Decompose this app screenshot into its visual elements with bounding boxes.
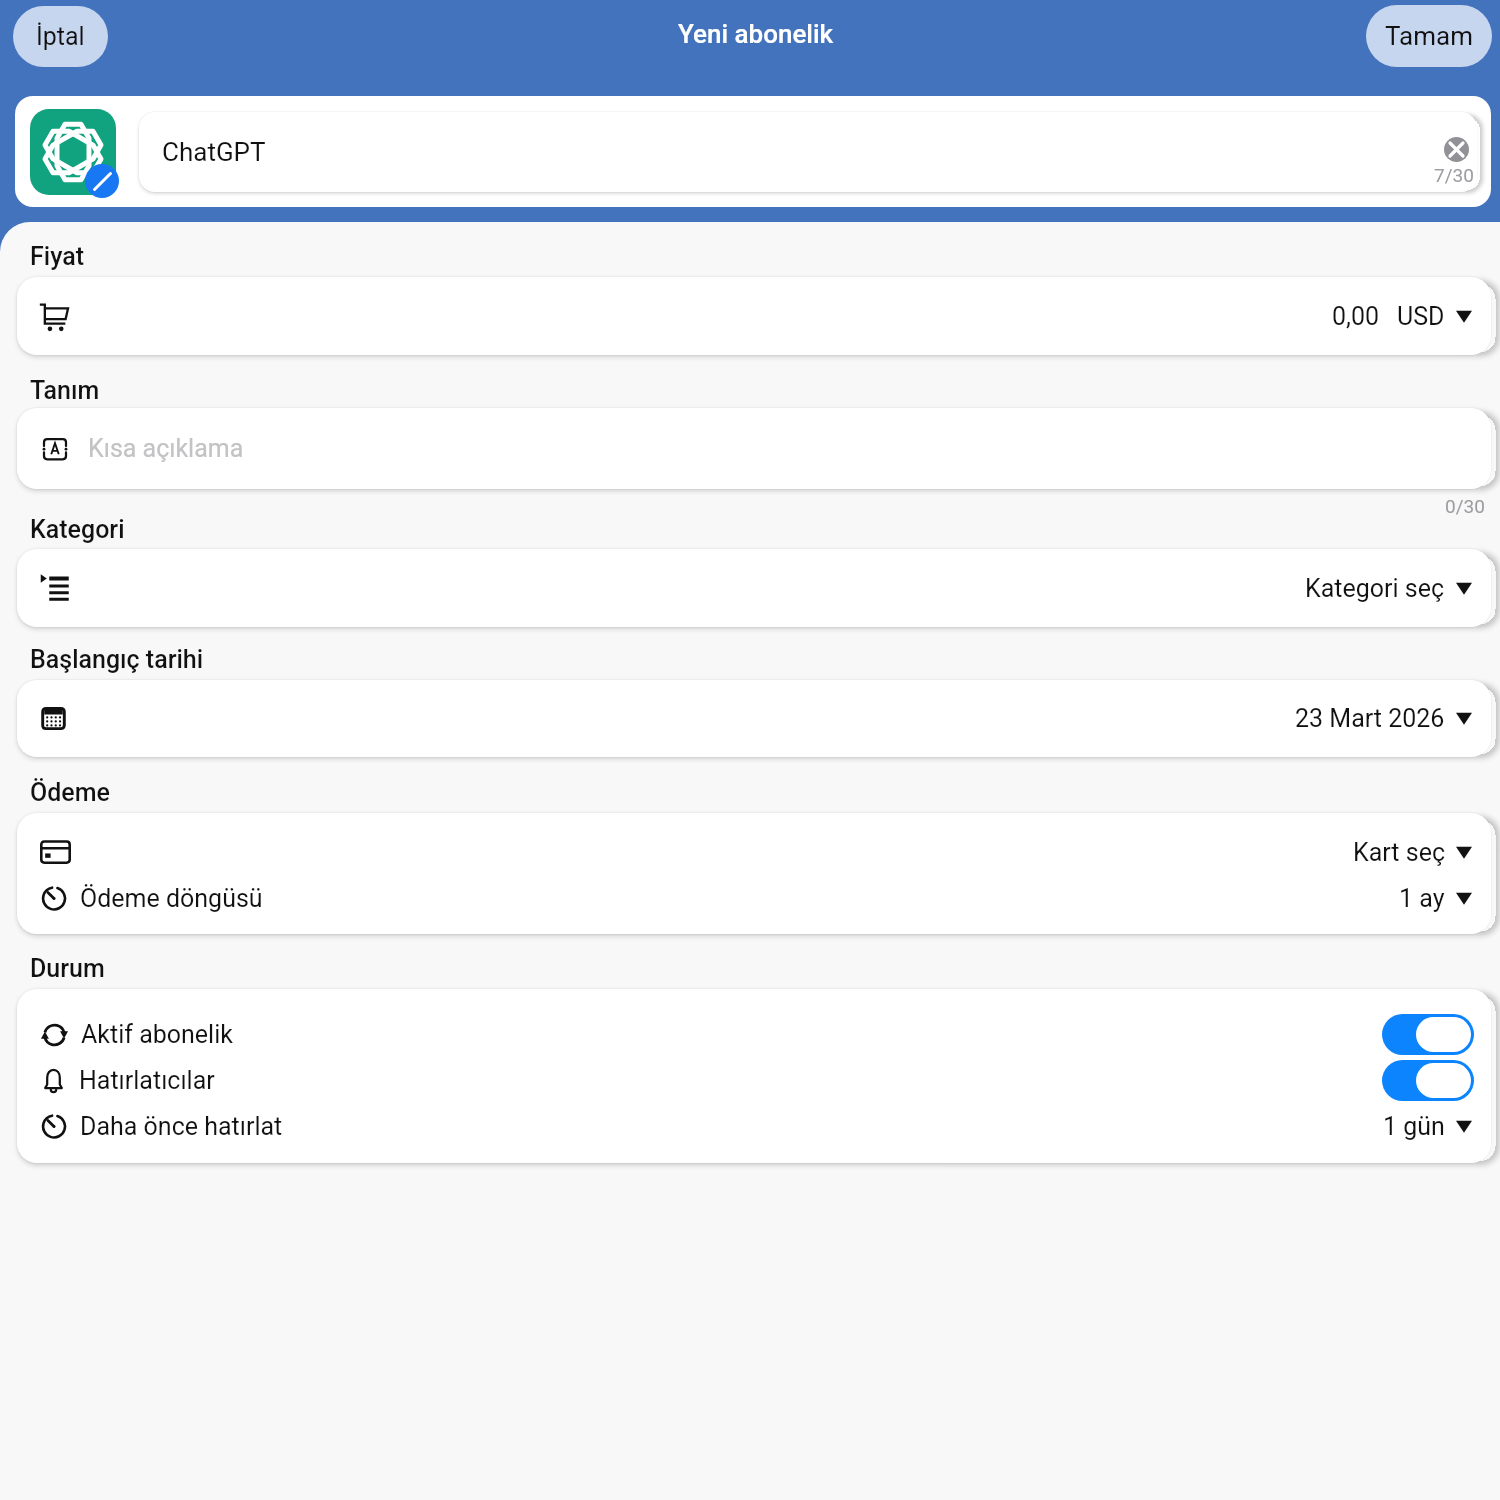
button[interactable]: Toggle switch, on bbox=[1382, 1060, 1474, 1101]
staticText: 1 ay bbox=[1399, 884, 1445, 913]
button[interactable]: Tamam bbox=[1366, 5, 1492, 67]
button[interactable]: İptal bbox=[13, 6, 108, 67]
button[interactable]: Kısa açıklama bbox=[17, 408, 1491, 489]
staticText: Kart seç bbox=[1353, 838, 1445, 867]
staticText: 1 gün bbox=[1383, 1112, 1445, 1141]
button[interactable]: ChatGPT bbox=[139, 112, 1477, 192]
button[interactable]: Kategori seç bbox=[17, 549, 1491, 627]
staticText: Başlangıç tarihi bbox=[30, 645, 204, 674]
staticText: Ödeme bbox=[30, 778, 110, 807]
staticText: Tanım bbox=[30, 376, 100, 405]
button[interactable]: Clear text bbox=[1444, 137, 1469, 162]
staticText: Kısa açıklama bbox=[88, 434, 244, 463]
button[interactable]: Change app icon bbox=[30, 109, 116, 195]
staticText: Yeni abonelik bbox=[678, 19, 834, 49]
staticText: Daha önce hatırlat bbox=[80, 1112, 283, 1141]
staticText: Kategori bbox=[30, 515, 125, 544]
staticText: USD bbox=[1397, 302, 1445, 331]
staticText: ChatGPT bbox=[162, 137, 266, 167]
staticText: 23 Mart 2026 bbox=[1295, 704, 1445, 733]
button[interactable]: Kart seç bbox=[17, 813, 1491, 934]
staticText: Ödeme döngüsü bbox=[80, 884, 263, 913]
staticText: 7/30 bbox=[1434, 164, 1474, 186]
staticText: Kategori seç bbox=[1305, 574, 1445, 603]
staticText: 0/30 bbox=[1445, 495, 1485, 517]
button[interactable]: 23 Mart 2026 bbox=[17, 680, 1491, 757]
staticText: Hatırlatıcılar bbox=[79, 1066, 215, 1095]
staticText: Durum bbox=[30, 954, 105, 983]
staticText: İptal bbox=[36, 22, 85, 51]
button[interactable]: 0,00 bbox=[17, 277, 1491, 355]
button[interactable]: Aktif abonelik bbox=[17, 989, 1491, 1163]
button[interactable]: Toggle switch, on bbox=[1382, 1014, 1474, 1055]
staticText: 0,00 bbox=[1332, 302, 1380, 331]
staticText: Fiyat bbox=[30, 242, 85, 271]
staticText: Aktif abonelik bbox=[81, 1020, 233, 1049]
staticText: Tamam bbox=[1385, 21, 1473, 51]
